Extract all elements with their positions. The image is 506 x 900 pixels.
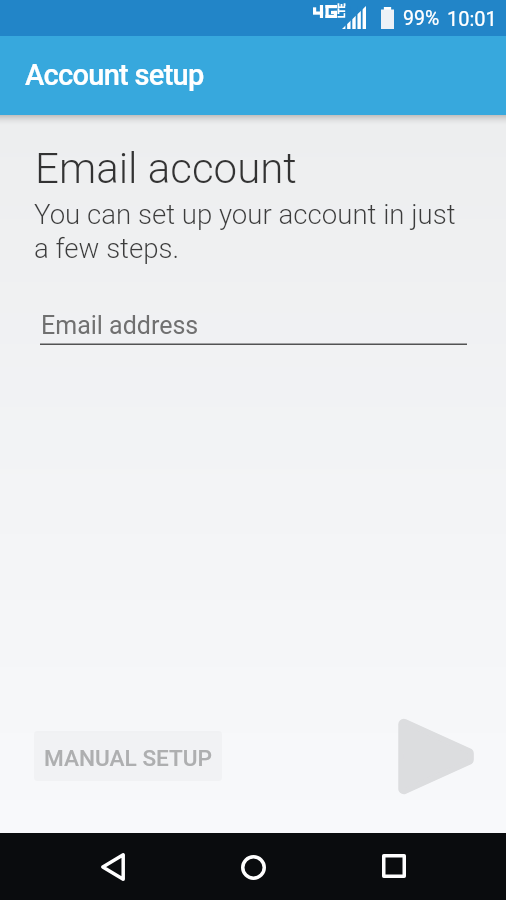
- button[interactable]: Back: [80, 834, 146, 900]
- staticText: 99%: [403, 7, 440, 30]
- button[interactable]: Next: [383, 706, 491, 806]
- staticText: LTE: [337, 3, 348, 18]
- staticText: Email account: [35, 144, 297, 193]
- staticText: Account setup: [25, 58, 204, 92]
- button[interactable]: Home: [220, 834, 286, 900]
- staticText: Email address: [41, 311, 199, 340]
- staticText: MANUAL SETUP: [44, 745, 213, 771]
- staticText: You can set up your account in just a fe…: [34, 198, 456, 265]
- button[interactable]: MANUAL SETUP: [34, 731, 222, 781]
- staticText: 10:01: [447, 7, 497, 30]
- button[interactable]: Recents: [361, 833, 427, 899]
